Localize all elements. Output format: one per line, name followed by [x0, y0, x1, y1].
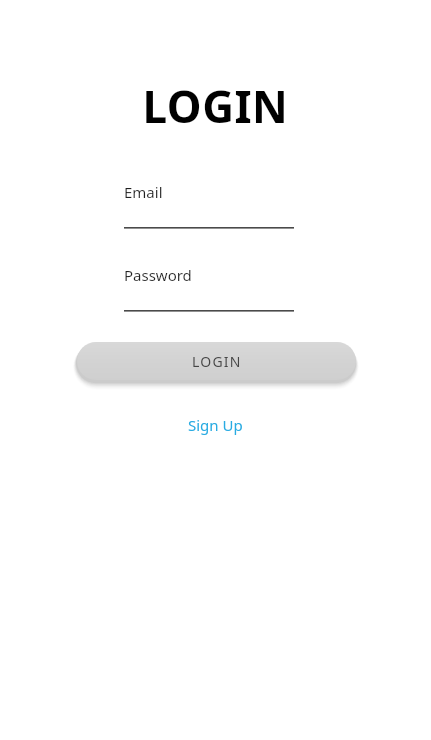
staticText: Email: [124, 182, 163, 202]
staticText: Password: [124, 265, 192, 285]
button[interactable]: LOGIN: [77, 342, 356, 380]
button[interactable]: Password: [124, 265, 294, 312]
staticText: LOGIN: [0, 76, 431, 136]
button[interactable]: Sign Up: [178, 411, 253, 439]
staticText: Sign Up: [188, 415, 243, 435]
button[interactable]: Email: [124, 182, 294, 229]
staticText: LOGIN: [192, 352, 242, 371]
